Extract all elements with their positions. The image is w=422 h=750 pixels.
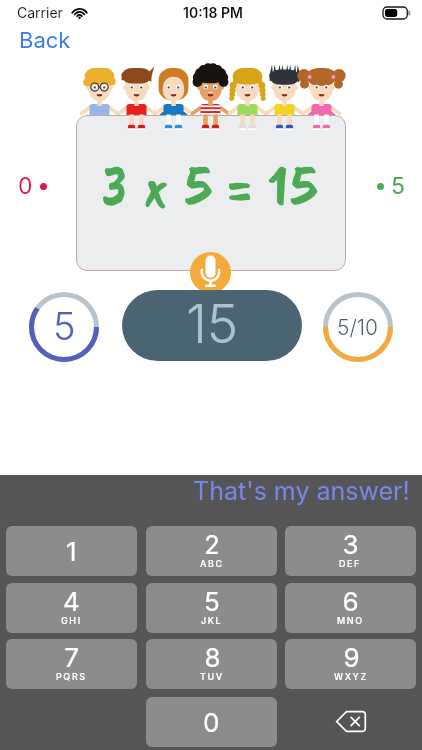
staticText: Carrier <box>17 4 63 21</box>
staticText: 6 <box>342 586 359 617</box>
staticText: DEF <box>339 558 362 569</box>
button[interactable]: 4 <box>6 583 137 633</box>
button[interactable]: That's my answer! <box>185 472 418 510</box>
staticText: 3 x 5 = 15 <box>102 148 320 222</box>
staticText: ABC <box>200 558 224 569</box>
staticText: 0 <box>18 172 33 200</box>
staticText: JKL <box>201 615 223 626</box>
button[interactable]: Backspace <box>285 696 416 746</box>
staticText: 15 <box>186 292 239 356</box>
staticText: GHI <box>61 615 82 626</box>
button[interactable]: 5/10 <box>323 292 393 362</box>
button[interactable]: 5 <box>29 292 99 362</box>
button[interactable]: 6 <box>285 583 416 633</box>
staticText: 10:18 PM <box>183 4 243 21</box>
staticText: 7 <box>64 642 79 673</box>
staticText: 3 <box>342 529 359 560</box>
button[interactable]: Speak answer <box>190 252 231 293</box>
staticText: Back <box>19 27 71 54</box>
button[interactable]: 8 <box>146 639 277 689</box>
staticText: 5 <box>53 303 76 349</box>
staticText: 5 <box>391 172 405 200</box>
staticText: 5/10 <box>337 315 379 340</box>
staticText: 0 <box>203 707 220 738</box>
button[interactable]: 15 <box>122 290 302 361</box>
button[interactable]: 5 <box>146 583 277 633</box>
staticText: That's my answer! <box>193 476 410 506</box>
button[interactable]: 3 <box>285 526 416 576</box>
staticText: PQRS <box>56 671 87 682</box>
staticText: MNO <box>337 615 364 626</box>
staticText: WXYZ <box>334 671 368 682</box>
button[interactable]: 2 <box>146 526 277 576</box>
button[interactable]: 7 <box>6 639 137 689</box>
button[interactable]: 9 <box>285 639 416 689</box>
staticText: 2 <box>204 529 220 560</box>
staticText: 5 <box>204 586 220 617</box>
staticText: 4 <box>63 586 80 617</box>
button[interactable]: 1 <box>6 526 137 576</box>
staticText: 9 <box>343 642 360 673</box>
button[interactable]: 0 <box>146 697 277 747</box>
staticText: TUV <box>200 671 224 682</box>
staticText: 8 <box>204 642 221 673</box>
staticText: 1 <box>66 536 77 567</box>
button[interactable]: Back <box>14 24 76 57</box>
